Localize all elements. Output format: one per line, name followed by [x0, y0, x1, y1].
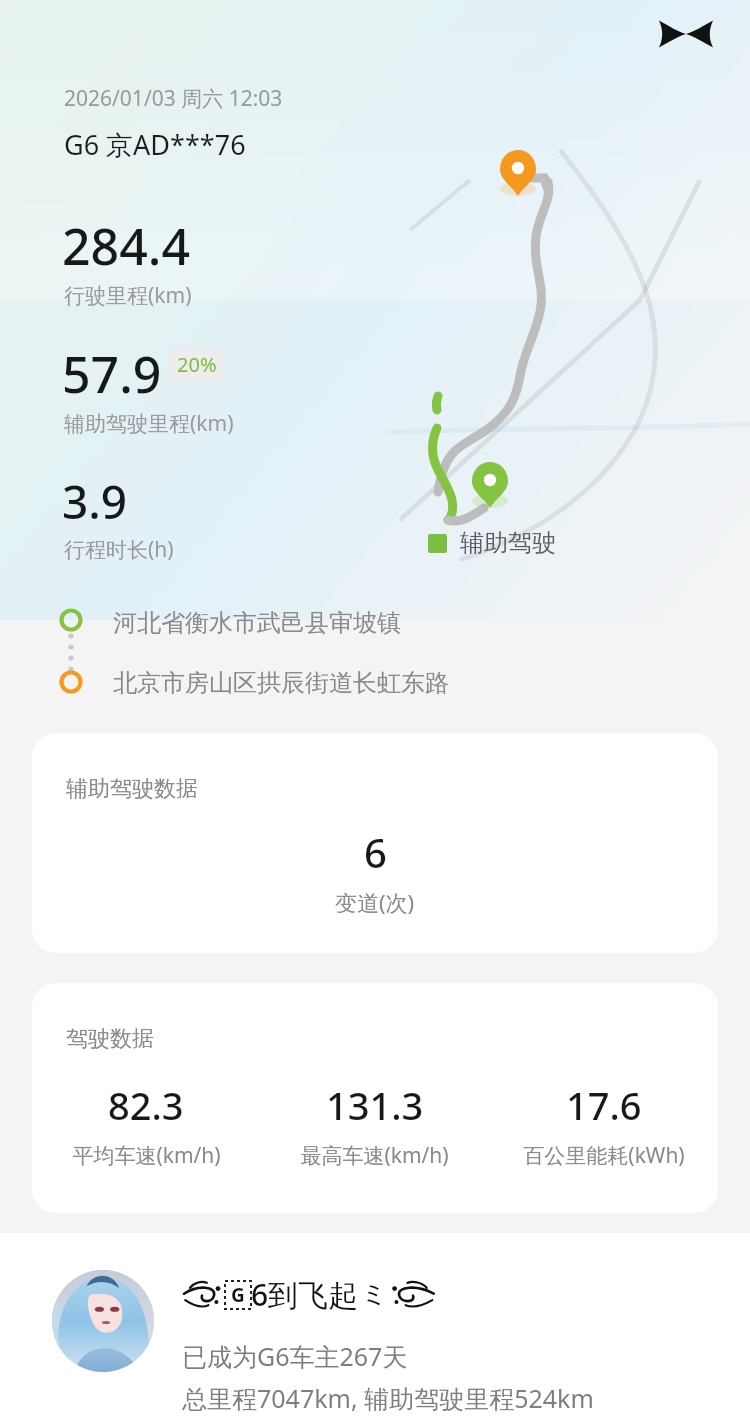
staticText: 平均车速(km/h) [72, 1141, 221, 1170]
staticText: 已成为G6车主267天 [182, 1339, 408, 1373]
staticText: 6到飞起 [251, 1274, 359, 1315]
staticText: 82.3 [108, 1079, 184, 1131]
staticText: 百公里能耗(kWh) [523, 1141, 685, 1170]
staticText: 变道(次) [335, 887, 415, 917]
staticText: 北京市房山区拱辰街道长虹东路 [113, 668, 449, 698]
staticText: G6 京AD***76 [64, 126, 246, 163]
button[interactable]: User avatar [52, 1270, 154, 1372]
button[interactable]: 辅助驾驶数据 [32, 733, 718, 953]
staticText: 总里程7047km, 辅助驾驶里程524km [182, 1381, 594, 1415]
staticText: 3.9 [62, 470, 128, 533]
staticText: 17.6 [566, 1079, 642, 1131]
button[interactable]: Brand logo [646, 10, 726, 58]
staticText: 行程时长(h) [64, 535, 174, 564]
staticText: 河北省衡水市武邑县审坡镇 [113, 608, 401, 638]
staticText: 行驶里程(km) [64, 281, 192, 310]
button[interactable]: User avatar [0, 1233, 750, 1420]
staticText: 131.3 [326, 1079, 424, 1131]
staticText: 284.4 [62, 212, 190, 280]
staticText: ミ [361, 1278, 388, 1311]
staticText: 辅助驾驶 [460, 528, 556, 558]
staticText: 辅助驾驶里程(km) [64, 409, 234, 438]
staticText: G [231, 1282, 245, 1308]
staticText: 57.9 [62, 340, 162, 408]
button[interactable]: 驾驶数据 [32, 983, 718, 1213]
staticText: 2026/01/03 周六 12:03 [64, 84, 283, 113]
staticText: 辅助驾驶数据 [66, 775, 198, 803]
staticText: 6 [364, 825, 387, 879]
staticText: 20% [177, 351, 217, 378]
staticText: 驾驶数据 [66, 1025, 154, 1053]
staticText: 最高车速(km/h) [300, 1141, 449, 1170]
